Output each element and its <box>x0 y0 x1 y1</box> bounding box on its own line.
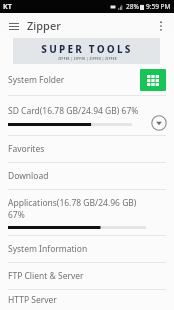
staticText: SUPER TOOLS <box>41 42 133 56</box>
button[interactable]: Applications(16.78 GB/24.96 GB) <box>0 190 174 235</box>
button[interactable]: System Information <box>0 236 174 262</box>
button[interactable]: Grid view <box>140 69 166 91</box>
button[interactable]: SUPER TOOLS <box>13 38 160 64</box>
button[interactable]: Open navigation drawer <box>6 18 22 34</box>
staticText: 67% <box>8 209 25 221</box>
button[interactable]: FTP Client & Server <box>0 263 174 289</box>
button[interactable]: System Folder <box>0 64 174 95</box>
staticText: System Folder <box>8 74 65 86</box>
staticText: Favorites <box>8 143 45 155</box>
button[interactable]: HTTP Server <box>0 290 174 310</box>
staticText: Zipper <box>27 18 61 33</box>
button[interactable]: SD Card(16.78 GB/24.94 GB) 67% <box>0 96 174 135</box>
staticText: Download <box>8 170 49 182</box>
button[interactable]: Favorites <box>0 136 174 162</box>
staticText: SD Card(16.78 GB/24.94 GB) 67% <box>8 105 139 117</box>
staticText: 28% <box>126 2 139 11</box>
staticText: HTTP Server <box>8 294 57 306</box>
staticText: Applications(16.78 GB/24.96 GB) <box>8 197 137 209</box>
staticText: System Information <box>8 243 88 255</box>
staticText: FTP Client & Server <box>8 270 84 282</box>
staticText: 9:59 PM <box>146 2 171 11</box>
staticText: ZIPPER | ZIPPER | ZIPPER | ZIPPER <box>58 57 117 61</box>
button[interactable]: Download <box>0 163 174 189</box>
button[interactable]: Expand <box>150 114 167 131</box>
staticText: KT <box>3 2 12 12</box>
button[interactable]: More options <box>153 18 169 34</box>
